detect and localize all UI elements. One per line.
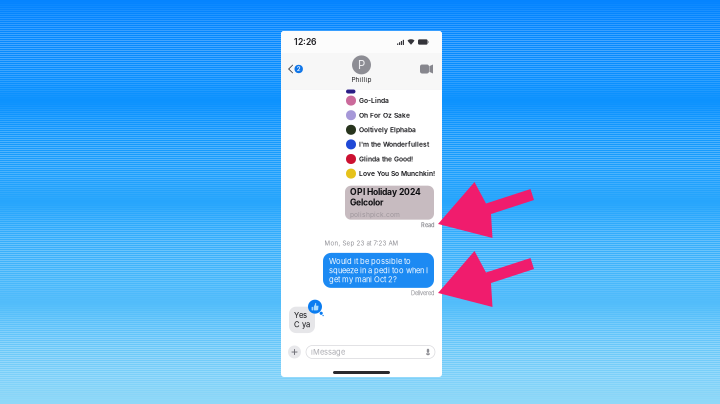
staticText: I'm the Wonderfullest <box>359 140 429 148</box>
button[interactable]: P <box>351 55 371 87</box>
button[interactable]: FaceTime <box>415 59 438 78</box>
staticText: Ooltively Elphaba <box>359 126 416 134</box>
staticText: Go-Linda <box>359 97 389 105</box>
staticText: iMessage <box>311 347 345 356</box>
button[interactable]: Ooltively Elphaba <box>346 123 434 137</box>
staticText: Yes C ya <box>294 311 310 329</box>
button[interactable]: I'm the Wonderfullest <box>346 137 434 151</box>
staticText: OPI Holiday 2024 <box>350 187 421 197</box>
staticText: Would it be possible to squeeze in a ped… <box>329 257 428 284</box>
button[interactable]: Add attachment <box>288 345 301 358</box>
button[interactable]: Oh For Oz Sake <box>346 108 434 122</box>
staticText: polishpick.com <box>350 210 400 219</box>
staticText: Glinda the Good! <box>359 155 413 163</box>
staticText: P <box>358 58 365 72</box>
staticText: Phillip <box>351 76 371 84</box>
staticText: Mon, Sep 23 at 7:23 AM <box>324 239 398 247</box>
button[interactable]: Back to conversations <box>285 58 306 79</box>
staticText: Delivered <box>411 290 434 297</box>
button[interactable]: Love You So Munchkin! <box>346 166 438 181</box>
button[interactable]: Glinda the Good! <box>346 152 434 166</box>
staticText: 12:26 <box>294 37 316 47</box>
staticText: Oh For Oz Sake <box>359 111 410 119</box>
staticText: Read <box>421 222 434 228</box>
button[interactable]: Go-Linda <box>346 93 434 108</box>
staticText: 2 <box>297 65 301 73</box>
staticText: Gelcolor <box>350 197 383 207</box>
staticText: Love You So Munchkin! <box>359 170 435 178</box>
